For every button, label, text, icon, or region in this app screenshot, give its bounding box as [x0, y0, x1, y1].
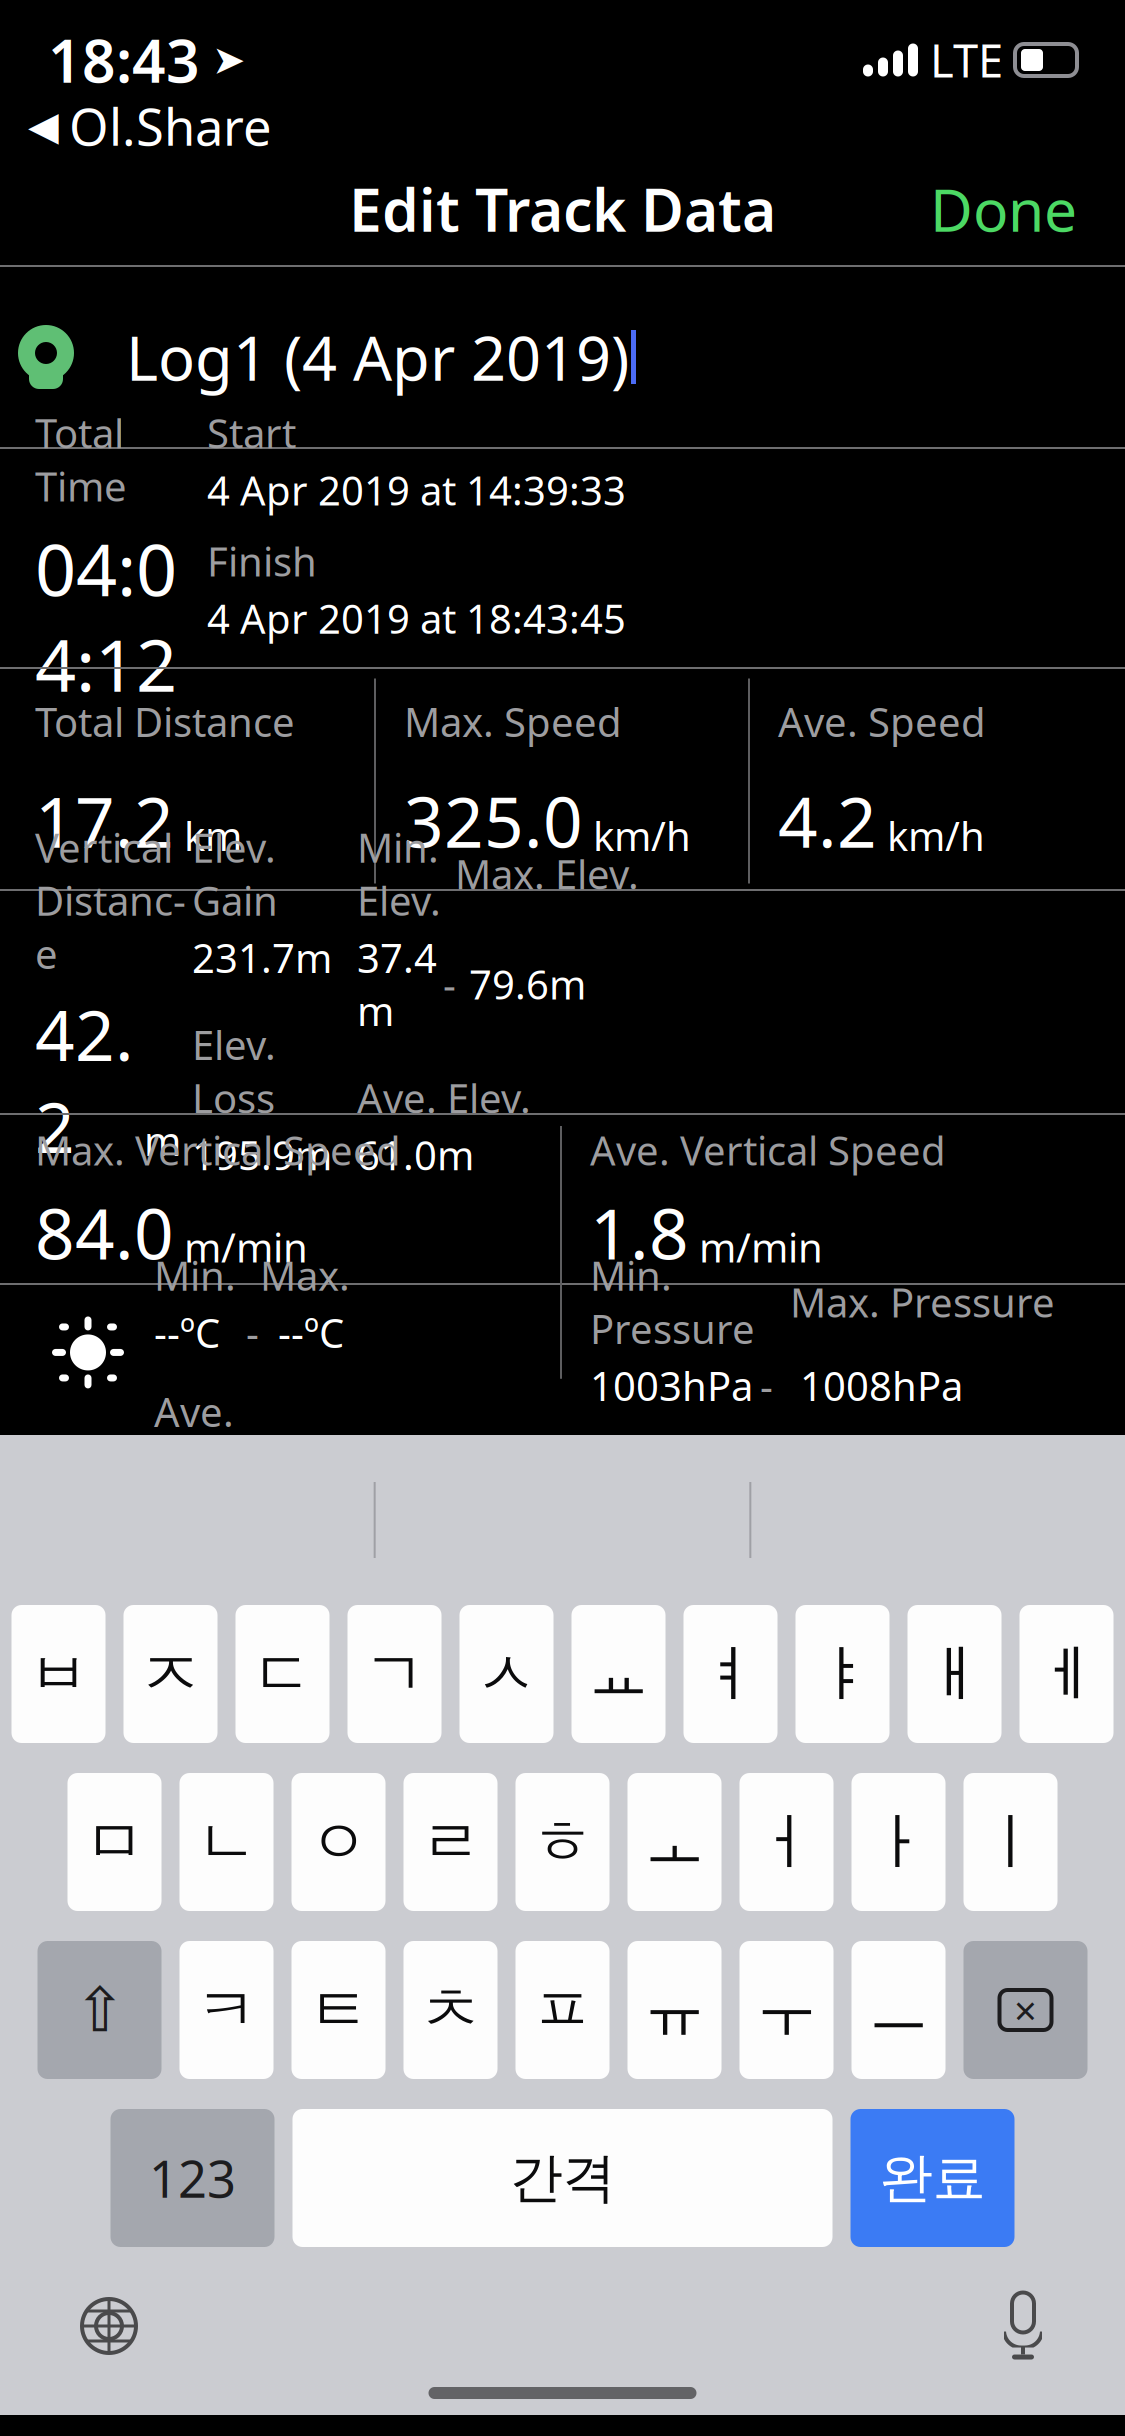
staticText: 18:43 — [48, 21, 200, 99]
staticText: 37.4m — [357, 931, 437, 1037]
staticText: ㅊ — [420, 1972, 481, 2048]
staticText: km/h — [887, 809, 985, 862]
staticText: m/min — [699, 1220, 823, 1274]
button[interactable]: Delete — [963, 1941, 1087, 2079]
staticText: Total Distance — [35, 695, 295, 748]
staticText: 완료 — [879, 2145, 985, 2211]
staticText: ⇧ — [74, 1975, 125, 2045]
staticText: 1003hPa — [590, 1359, 753, 1412]
button[interactable]: 완료 — [850, 2109, 1014, 2247]
staticText: Elev. Loss — [192, 1018, 276, 1124]
staticText: ㄱ — [364, 1636, 425, 1712]
staticText: Max. Elev. — [455, 847, 639, 900]
staticText: Min. Pressure — [590, 1249, 755, 1355]
staticText: Ave. Elev. — [357, 1071, 531, 1124]
staticText: ㅎ — [532, 1804, 593, 1880]
staticText: m/min — [184, 1220, 308, 1274]
button[interactable]: Dictation — [983, 2273, 1063, 2379]
staticText: 4 Apr 2019 at 18:43:45 — [207, 592, 626, 645]
staticText: 04:04:12 — [35, 520, 177, 712]
button[interactable]: Log1 (4 Apr 2019) — [0, 267, 1125, 447]
staticText: ㅋ — [196, 1972, 257, 2048]
staticText: ㅣ — [980, 1804, 1041, 1880]
staticText: --ºC — [154, 1306, 220, 1359]
staticText: ㄴ — [196, 1804, 257, 1880]
staticText: ㅂ — [28, 1636, 89, 1712]
button[interactable]: ㅂ — [11, 1605, 105, 1743]
staticText: 42.2 — [35, 988, 134, 1172]
staticText: ㅡ — [868, 1972, 929, 2048]
button[interactable]: Next keyboard — [62, 2279, 156, 2373]
staticText: Max. Pressure — [790, 1275, 1055, 1328]
button[interactable]: ㅎ — [515, 1773, 609, 1911]
button[interactable]: ㅛ — [571, 1605, 665, 1743]
staticText: ◀ — [28, 103, 59, 149]
button[interactable]: ㅍ — [515, 1941, 609, 2079]
staticText: Log1 (4 Apr 2019) — [126, 316, 629, 398]
staticText: Finish — [207, 534, 317, 588]
button[interactable]: 123 — [110, 2109, 274, 2247]
button[interactable]: ㅈ — [123, 1605, 217, 1743]
staticText: ㅇ — [308, 1804, 369, 1880]
staticText: - — [443, 957, 456, 1010]
staticText: Done — [930, 170, 1077, 248]
staticText: Start — [207, 406, 296, 459]
button[interactable]: ㅑ — [795, 1605, 889, 1743]
staticText: 79.6m — [469, 957, 586, 1010]
button[interactable]: 간격 — [292, 2109, 832, 2247]
staticText: Ave. Vertical Speed — [590, 1123, 946, 1176]
staticText: ㄹ — [420, 1804, 481, 1880]
staticText: - — [760, 1359, 773, 1412]
staticText: ㅈ — [140, 1636, 201, 1712]
staticText: Elev. Gain — [192, 821, 278, 927]
button[interactable]: Done — [918, 162, 1089, 256]
button[interactable]: ㅇ — [291, 1773, 385, 1911]
staticText: 123 — [149, 2144, 236, 2212]
button[interactable]: ㄷ — [235, 1605, 329, 1743]
staticText: ㅌ — [308, 1972, 369, 2048]
staticText: Ol.Share — [69, 92, 272, 160]
staticText: LTE — [930, 30, 1003, 90]
button[interactable]: ㅗ — [627, 1773, 721, 1911]
button[interactable]: ㅡ — [851, 1941, 945, 2079]
button[interactable]: ㅌ — [291, 1941, 385, 2079]
staticText: ㄷ — [252, 1636, 313, 1712]
button[interactable]: ㅔ — [1019, 1605, 1113, 1743]
staticText: 4 Apr 2019 at 14:39:33 — [207, 463, 626, 516]
staticText: ㅠ — [644, 1972, 705, 2048]
staticText: Vertical — [35, 821, 173, 874]
button[interactable]: ㄱ — [347, 1605, 441, 1743]
staticText: Total Time — [35, 406, 127, 512]
staticText: ㅛ — [588, 1636, 649, 1712]
staticText: × — [1014, 1983, 1037, 2036]
staticText: Max. Speed — [404, 695, 622, 748]
button[interactable]: ◀ — [28, 88, 272, 164]
button[interactable]: ㅋ — [179, 1941, 273, 2079]
staticText: km/h — [593, 809, 691, 862]
button[interactable]: ㅏ — [851, 1773, 945, 1911]
staticText: ㅗ — [644, 1804, 705, 1880]
button[interactable]: ㄴ — [179, 1773, 273, 1911]
button[interactable]: Shift — [37, 1941, 161, 2079]
button[interactable]: ㅅ — [459, 1605, 553, 1743]
button[interactable]: ㅣ — [963, 1773, 1057, 1911]
staticText: - — [246, 1306, 259, 1359]
button[interactable]: ㅕ — [683, 1605, 777, 1743]
staticText: ㅍ — [532, 1972, 593, 2048]
button[interactable]: ㅠ — [627, 1941, 721, 2079]
staticText: 61.0m — [357, 1128, 474, 1181]
button[interactable]: ㅜ — [739, 1941, 833, 2079]
staticText: ㅔ — [1036, 1636, 1097, 1712]
button[interactable]: ㅐ — [907, 1605, 1001, 1743]
staticText: km — [184, 809, 242, 862]
staticText: Ave. — [154, 1385, 234, 1438]
staticText: 간격 — [509, 2145, 615, 2211]
button[interactable]: ㄹ — [403, 1773, 497, 1911]
staticText: 195.9m — [192, 1128, 332, 1181]
button[interactable]: ㅊ — [403, 1941, 497, 2079]
staticText: ㅅ — [476, 1636, 537, 1712]
staticText: Min. Elev. — [357, 821, 441, 927]
button[interactable]: ㅁ — [67, 1773, 161, 1911]
button[interactable]: ㅓ — [739, 1773, 833, 1911]
